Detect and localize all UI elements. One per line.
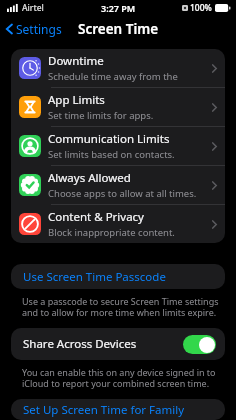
button[interactable]: Set Up Screen Time for Family: [11, 399, 225, 420]
staticText: Schedule time away from the screen.: [48, 70, 208, 83]
staticText: Airtel: [22, 2, 44, 14]
staticText: Settings: [16, 21, 62, 37]
staticText: Content & Privacy Restrictions: [48, 209, 208, 225]
staticText: You can enable this on any device signed…: [22, 366, 220, 390]
button[interactable]: App Limits: [11, 88, 225, 126]
staticText: Communication Limits: [48, 131, 170, 147]
button[interactable]: Content & Privacy Restrictions: [11, 205, 225, 243]
button[interactable]: Use Screen Time Passcode: [11, 264, 225, 289]
staticText: Set Up Screen Time for Family: [23, 402, 185, 418]
staticText: Share Across Devices: [23, 336, 137, 352]
button[interactable]: Always Allowed: [11, 166, 225, 204]
staticText: 100%: [190, 2, 212, 14]
button[interactable]: Communication Limits: [11, 127, 225, 165]
staticText: Use a passcode to secure Screen Time set…: [22, 295, 220, 319]
staticText: Downtime: [48, 53, 104, 69]
button[interactable]: Downtime: [11, 49, 225, 87]
staticText: Screen Time: [78, 20, 159, 38]
button[interactable]: Settings: [0, 18, 68, 40]
staticText: Set time limits for apps.: [48, 109, 154, 122]
staticText: Choose apps to allow at all times.: [48, 187, 197, 200]
staticText: 3:27 PM: [101, 2, 136, 14]
staticText: Always Allowed: [48, 170, 131, 186]
staticText: App Limits: [48, 92, 105, 108]
staticText: Set limits based on contacts.: [48, 148, 175, 161]
staticText: Block inappropriate content.: [48, 226, 175, 239]
button[interactable]: Share Across Devices toggle, on: [183, 335, 216, 354]
button[interactable]: Share Across Devices: [11, 328, 225, 360]
staticText: Use Screen Time Passcode: [23, 269, 166, 285]
